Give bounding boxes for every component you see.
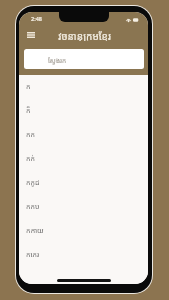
staticText: កកប	[26, 202, 40, 212]
staticText: កកូដ	[26, 178, 40, 188]
staticText: ក	[26, 82, 31, 92]
staticText: ស្វែងរក	[48, 56, 67, 65]
button[interactable]: កកូដ	[19, 171, 148, 195]
button[interactable]: ក៏	[19, 99, 148, 123]
button[interactable]: កកាយ	[19, 219, 148, 243]
staticText: កក	[26, 130, 35, 140]
staticText: កកេរ	[26, 250, 39, 260]
staticText: វចនានុក្រមខ្មែរ	[58, 29, 111, 41]
button[interactable]: Menu	[25, 29, 37, 41]
staticText: ក៏	[26, 106, 31, 116]
staticText: កក់	[26, 154, 35, 164]
staticText: 2:48	[31, 15, 42, 22]
button[interactable]: ក	[19, 75, 148, 99]
button[interactable]: កកប	[19, 195, 148, 219]
button[interactable]: កក	[19, 123, 148, 147]
button[interactable]: កកេរ	[19, 243, 148, 267]
staticText: កកាយ	[26, 226, 44, 236]
button[interactable]: កក់	[19, 147, 148, 171]
button[interactable]: ស្វែងរក	[24, 49, 144, 69]
